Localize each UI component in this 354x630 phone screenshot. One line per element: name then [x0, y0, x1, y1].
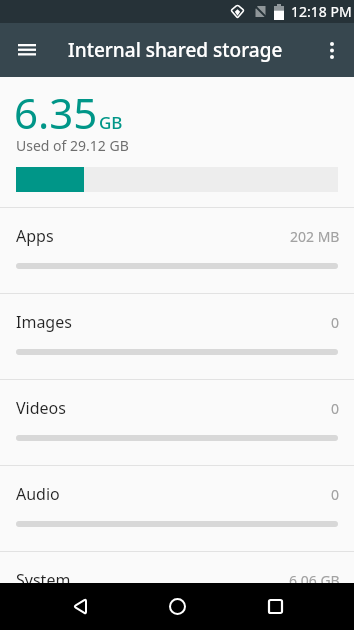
button[interactable]	[252, 583, 299, 630]
staticText: GB	[99, 111, 123, 134]
staticText: 0	[331, 399, 340, 418]
button[interactable]: Videos	[0, 380, 354, 465]
staticText: Images	[16, 311, 72, 333]
button[interactable]	[154, 583, 201, 630]
button[interactable]: Audio	[0, 466, 354, 551]
staticText: Videos	[16, 397, 66, 419]
staticText: Internal shared storage	[68, 37, 283, 63]
staticText: System	[16, 569, 71, 591]
button[interactable]	[56, 583, 103, 630]
button[interactable]	[316, 34, 348, 66]
button[interactable]: Images	[0, 294, 354, 379]
staticText: 0	[331, 313, 340, 332]
staticText: 0	[331, 485, 340, 504]
staticText: 6.35	[14, 84, 98, 141]
staticText: Used of 29.12 GB	[16, 136, 129, 155]
button[interactable]: Apps	[0, 208, 354, 293]
staticText: 202 MB	[290, 227, 340, 246]
staticText: Apps	[16, 225, 54, 247]
staticText: Audio	[16, 483, 60, 505]
staticText: 12:18 PM	[291, 2, 352, 21]
button[interactable]	[9, 32, 45, 68]
staticText: 6.06 GB	[289, 571, 340, 590]
button[interactable]: System	[0, 552, 354, 630]
